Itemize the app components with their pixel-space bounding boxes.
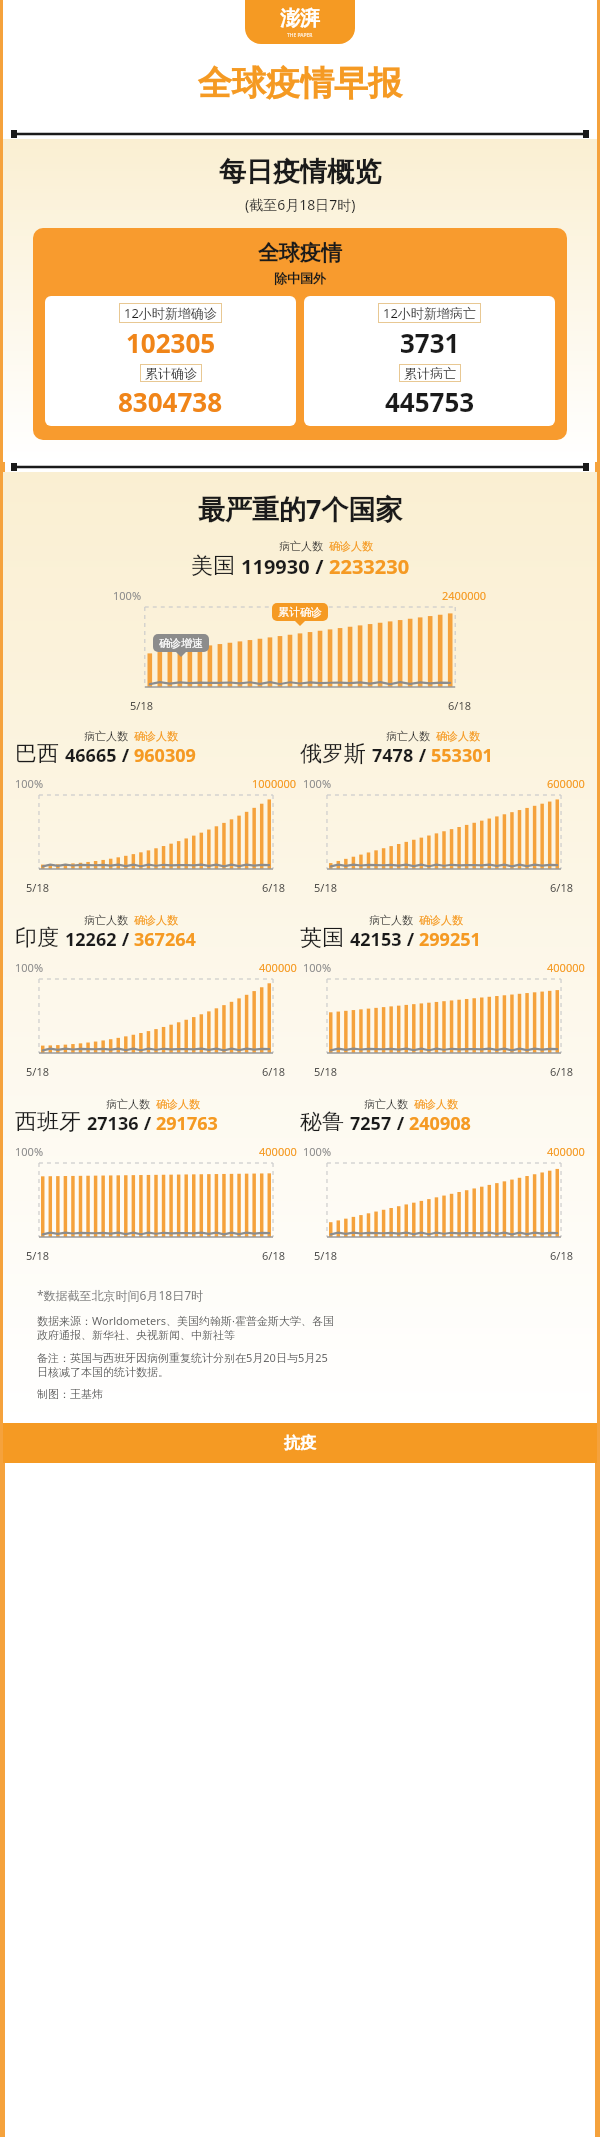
- staticText: /: [310, 553, 329, 580]
- staticText: 确诊人数: [436, 729, 480, 743]
- staticText: 确诊人数: [329, 539, 373, 553]
- staticText: 制图：王基炜: [37, 1387, 103, 1401]
- staticText: 600000: [547, 776, 585, 791]
- staticText: 备注：英国与西班牙因病例重复统计分别在5月20日与5月25: [37, 1350, 328, 1365]
- staticText: 12小时新增确诊: [124, 304, 217, 322]
- staticText: 病亡人数: [279, 539, 323, 553]
- staticText: 除中国外: [274, 270, 326, 286]
- staticText: 5/18: [26, 880, 49, 895]
- button[interactable]: 俄罗斯: [300, 729, 493, 768]
- staticText: 7257: [350, 1111, 392, 1136]
- staticText: 299251: [419, 927, 481, 952]
- button[interactable]: 12小时新增确诊: [45, 296, 296, 426]
- staticText: 确诊人数: [156, 1097, 200, 1111]
- staticText: 6/18: [262, 1248, 285, 1263]
- staticText: 病亡人数: [106, 1097, 150, 1111]
- staticText: 6/18: [262, 880, 285, 895]
- staticText: 42153: [350, 927, 402, 952]
- staticText: 100%: [303, 1144, 332, 1159]
- staticText: 美国: [191, 552, 235, 580]
- staticText: 确诊人数: [414, 1097, 458, 1111]
- staticText: 确诊人数: [134, 729, 178, 743]
- button[interactable]: The Paper logo: [245, 0, 355, 44]
- button[interactable]: 抗疫: [3, 1423, 597, 1463]
- staticText: 400000: [259, 960, 297, 975]
- staticText: 960309: [134, 743, 196, 768]
- staticText: /: [392, 1111, 409, 1136]
- staticText: 2233230: [329, 553, 410, 580]
- button[interactable]: 英国: [300, 913, 481, 952]
- staticText: /: [117, 743, 134, 768]
- staticText: 累计确诊: [145, 365, 197, 381]
- button[interactable]: 巴西: [15, 729, 196, 768]
- staticText: 5/18: [314, 1064, 337, 1079]
- staticText: 巴西: [15, 740, 59, 768]
- staticText: 1000000: [252, 776, 297, 791]
- staticText: 俄罗斯: [300, 740, 366, 768]
- button[interactable]: 全球疫情: [33, 228, 567, 440]
- staticText: 12262: [65, 927, 117, 952]
- staticText: 119930: [241, 553, 310, 580]
- staticText: 政府通报、新华社、央视新闻、中新社等: [37, 1328, 235, 1342]
- button[interactable]: 印度: [15, 913, 196, 952]
- staticText: 6/18: [550, 1064, 573, 1079]
- staticText: (截至6月18日7时): [245, 195, 356, 214]
- staticText: 100%: [303, 960, 332, 975]
- staticText: 累计病亡: [404, 365, 456, 381]
- staticText: 日核减了本国的统计数据。: [37, 1365, 169, 1379]
- staticText: 最严重的7个国家: [198, 490, 403, 527]
- staticText: 553301: [431, 743, 493, 768]
- staticText: 102305: [126, 325, 216, 360]
- staticText: 抗疫: [284, 1433, 316, 1453]
- staticText: 5/18: [314, 880, 337, 895]
- staticText: 印度: [15, 924, 59, 952]
- staticText: 6/18: [550, 1248, 573, 1263]
- button[interactable]: 12小时新增病亡: [304, 296, 555, 426]
- staticText: 445753: [385, 384, 475, 419]
- staticText: 27136: [87, 1111, 139, 1136]
- staticText: 澎湃: [280, 6, 320, 31]
- staticText: /: [117, 927, 134, 952]
- staticText: 7478: [372, 743, 414, 768]
- staticText: 46665: [65, 743, 117, 768]
- staticText: 西班牙: [15, 1108, 81, 1136]
- staticText: 全球疫情: [258, 240, 342, 266]
- staticText: 6/18: [550, 880, 573, 895]
- staticText: 6/18: [448, 698, 471, 713]
- staticText: 5/18: [26, 1064, 49, 1079]
- button[interactable]: 美国: [191, 539, 410, 580]
- staticText: 确诊增速: [159, 636, 203, 650]
- staticText: 240908: [409, 1111, 471, 1136]
- staticText: 400000: [547, 1144, 585, 1159]
- staticText: 病亡人数: [84, 913, 128, 927]
- staticText: 100%: [15, 776, 44, 791]
- staticText: *数据截至北京时间6月18日7时: [37, 1287, 204, 1303]
- staticText: /: [139, 1111, 156, 1136]
- staticText: 确诊人数: [419, 913, 463, 927]
- staticText: 确诊人数: [134, 913, 178, 927]
- staticText: 累计确诊: [278, 605, 322, 619]
- staticText: 100%: [303, 776, 332, 791]
- staticText: /: [402, 927, 419, 952]
- staticText: 病亡人数: [364, 1097, 408, 1111]
- staticText: 3731: [400, 325, 460, 360]
- staticText: 秘鲁: [300, 1108, 344, 1136]
- staticText: 8304738: [118, 384, 223, 419]
- staticText: 6/18: [262, 1064, 285, 1079]
- staticText: 400000: [259, 1144, 297, 1159]
- staticText: 英国: [300, 924, 344, 952]
- staticText: 数据来源：Worldometers、美国约翰斯·霍普金斯大学、各国: [37, 1313, 334, 1328]
- staticText: 每日疫情概览: [219, 155, 381, 189]
- staticText: 291763: [156, 1111, 218, 1136]
- staticText: THE PAPER: [287, 32, 313, 39]
- staticText: /: [414, 743, 431, 768]
- staticText: 5/18: [26, 1248, 49, 1263]
- staticText: 病亡人数: [369, 913, 413, 927]
- staticText: 400000: [547, 960, 585, 975]
- staticText: 12小时新增病亡: [383, 304, 476, 322]
- staticText: 病亡人数: [386, 729, 430, 743]
- button[interactable]: 西班牙: [15, 1097, 218, 1136]
- button[interactable]: 秘鲁: [300, 1097, 471, 1136]
- staticText: 5/18: [130, 698, 153, 713]
- staticText: 病亡人数: [84, 729, 128, 743]
